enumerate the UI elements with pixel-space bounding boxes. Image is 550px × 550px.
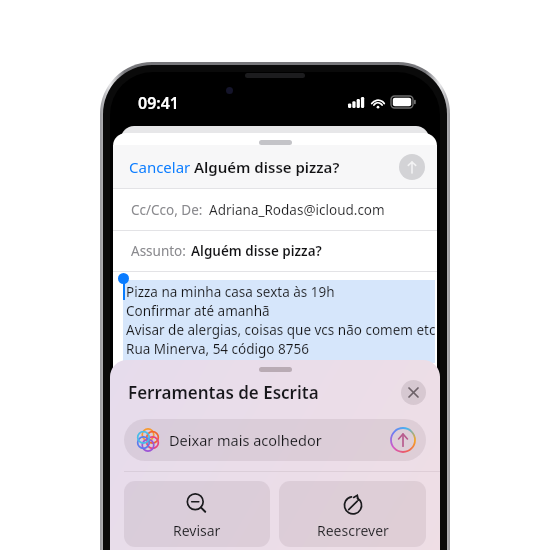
staticText: 09:41 — [138, 92, 180, 114]
button[interactable]: Cancelar — [127, 153, 193, 181]
button[interactable]: Enviar — [399, 154, 425, 180]
staticText: Revisar — [173, 521, 221, 540]
staticText: Confirmar até amanhã — [126, 302, 270, 320]
staticText: Pizza na minha casa sexta às 19h — [126, 283, 335, 301]
button[interactable]: Revisar — [124, 481, 270, 547]
staticText: Ferramentas de Escrita — [128, 381, 319, 404]
staticText: Alguém disse pizza? — [194, 157, 340, 177]
staticText: Cancelar — [129, 157, 191, 177]
button[interactable]: Reescrever — [279, 481, 426, 547]
button[interactable]: Deixar mais acolhedor — [124, 419, 426, 461]
staticText: Rua Minerva, 54 código 8756 — [126, 340, 309, 358]
staticText: Alguém disse pizza? — [191, 242, 322, 260]
staticText: Avisar de alergias, coisas que vcs não c… — [126, 321, 436, 339]
staticText: Cc/Cco, De: — [131, 201, 203, 219]
staticText: Assunto: — [131, 242, 186, 260]
button[interactable]: Fechar — [401, 380, 426, 405]
staticText: Deixar mais acolhedor — [169, 430, 322, 450]
staticText: Adriana_Rodas@icloud.com — [209, 201, 385, 219]
staticText: Reescrever — [317, 521, 389, 540]
